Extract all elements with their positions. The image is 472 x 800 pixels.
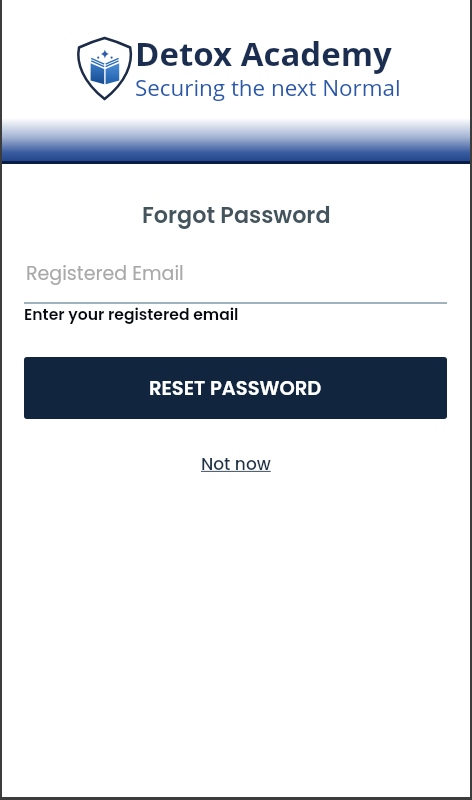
staticText: Forgot Password [142, 200, 331, 231]
staticText: Securing the next Normal [135, 72, 401, 103]
staticText: RESET PASSWORD [149, 375, 322, 402]
staticText: Enter your registered email [24, 304, 239, 326]
button[interactable]: Registered Email [24, 252, 447, 304]
button[interactable]: Not now [201, 452, 271, 476]
staticText: Registered Email [26, 260, 184, 287]
staticText: Not now [201, 452, 271, 476]
staticText: Detox Academy [135, 31, 392, 76]
button[interactable]: RESET PASSWORD [24, 357, 447, 419]
